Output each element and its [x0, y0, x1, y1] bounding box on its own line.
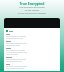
- button[interactable]: [6, 64, 60, 71]
- staticText: True Encrypted: [0, 1, 64, 5]
- button[interactable]: [6, 30, 60, 32]
- staticText: No one can read your messages: [2, 12, 62, 15]
- staticText: The strongest encryption on the market: [3, 6, 61, 12]
- button[interactable]: [6, 34, 60, 41]
- button[interactable]: [6, 41, 60, 48]
- button[interactable]: [6, 57, 60, 64]
- button[interactable]: App preview header: [4, 18, 60, 28]
- button[interactable]: [6, 48, 60, 57]
